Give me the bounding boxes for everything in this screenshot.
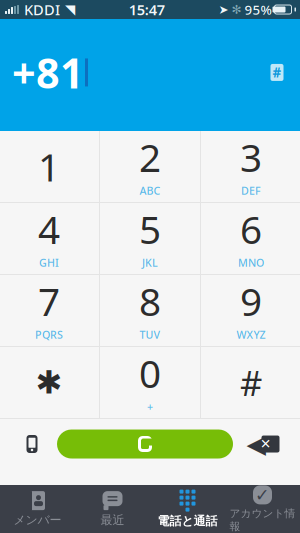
staticText: +	[147, 400, 153, 414]
button[interactable]: Phone settings	[7, 422, 57, 466]
staticText: PQRS	[35, 328, 63, 342]
staticText: ◀	[246, 430, 265, 458]
button[interactable]: 最近	[75, 485, 150, 533]
staticText: 電話と通話	[157, 514, 217, 528]
button[interactable]: 1	[0, 131, 99, 202]
button[interactable]: 3	[201, 131, 300, 202]
staticText: ◥	[65, 2, 75, 17]
staticText: 0	[139, 347, 161, 398]
staticText: 5	[139, 203, 161, 254]
staticText: 95%	[244, 1, 271, 18]
staticText: 6	[240, 203, 262, 254]
staticText: TUV	[139, 328, 160, 342]
staticText: 1	[38, 141, 60, 192]
button[interactable]: ✓	[225, 485, 300, 533]
staticText: メンバー	[13, 513, 61, 527]
staticText: DEF	[241, 184, 261, 198]
staticText: KDDI	[24, 0, 60, 19]
staticText: ✕	[260, 436, 271, 451]
button[interactable]: 8	[100, 275, 200, 346]
staticText: 15:47	[129, 0, 165, 19]
staticText: GHI	[39, 256, 59, 270]
button[interactable]: 0	[100, 347, 200, 418]
button[interactable]: #	[201, 347, 300, 418]
staticText: JKL	[142, 256, 158, 270]
staticText: 最近	[100, 513, 124, 527]
staticText: #	[240, 359, 262, 405]
staticText: ✱	[35, 364, 62, 401]
staticText: 2	[139, 131, 161, 182]
button[interactable]: 7	[0, 275, 99, 346]
button[interactable]: メンバー	[0, 485, 75, 533]
staticText: 8	[139, 275, 161, 326]
button[interactable]: Call	[57, 422, 233, 466]
staticText: ✻	[231, 3, 241, 16]
staticText: MNO	[238, 256, 264, 270]
button[interactable]: 5	[100, 203, 200, 274]
staticText: アカウント情報	[229, 507, 295, 533]
staticText: 7	[38, 275, 60, 326]
staticText: 3	[240, 131, 262, 182]
staticText: WXYZ	[236, 328, 265, 342]
button[interactable]: ✱	[0, 347, 99, 418]
staticText: ➤	[218, 3, 228, 16]
staticText: ABC	[139, 184, 160, 198]
staticText: 9	[240, 275, 262, 326]
staticText: +81	[12, 45, 84, 100]
button[interactable]: 2	[100, 131, 200, 202]
staticText: ✓	[255, 485, 270, 505]
staticText: 4	[38, 203, 60, 254]
button[interactable]: 4	[0, 203, 99, 274]
button[interactable]: 6	[201, 203, 300, 274]
staticText: #	[272, 64, 281, 81]
button[interactable]: Keypad options	[264, 59, 290, 85]
button[interactable]: 電話と通話	[150, 485, 225, 533]
button[interactable]: 9	[201, 275, 300, 346]
button[interactable]: Delete	[233, 422, 293, 466]
